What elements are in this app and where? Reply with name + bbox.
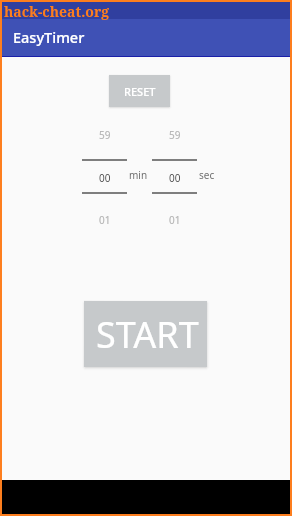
- staticText: hack-cheat.org: [4, 2, 110, 21]
- staticText: 59: [99, 128, 111, 142]
- staticText: 59: [169, 128, 181, 142]
- button[interactable]: RESET: [109, 75, 170, 107]
- staticText: 00: [99, 171, 111, 185]
- staticText: 01: [99, 213, 111, 227]
- staticText: min: [129, 168, 148, 182]
- staticText: 01: [169, 213, 181, 227]
- button[interactable]: Minutes picker: [82, 115, 127, 223]
- staticText: 00: [169, 171, 181, 185]
- button[interactable]: START: [84, 301, 207, 367]
- staticText: EasyTimer: [13, 27, 85, 47]
- button[interactable]: Seconds picker: [152, 115, 197, 223]
- staticText: START: [96, 310, 199, 359]
- staticText: sec: [199, 168, 215, 182]
- staticText: RESET: [124, 84, 156, 99]
